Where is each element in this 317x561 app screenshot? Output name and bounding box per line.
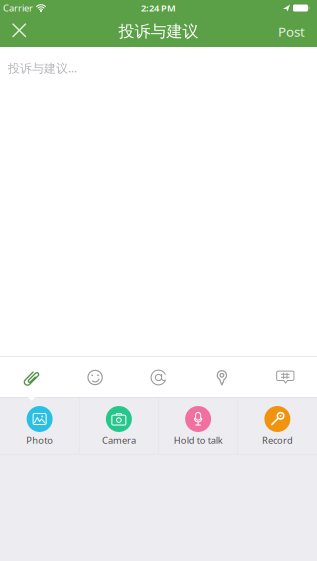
staticText: Photo — [26, 434, 53, 446]
button[interactable] — [73, 357, 117, 397]
staticText: 投诉与建议... — [8, 60, 77, 76]
staticText: 投诉与建议 — [118, 22, 198, 41]
button[interactable]: Post — [278, 15, 305, 48]
button[interactable]: Photo — [0, 397, 79, 455]
button[interactable] — [263, 357, 307, 397]
button[interactable] — [6, 18, 32, 45]
button[interactable]: Camera — [79, 397, 158, 455]
staticText: Carrier — [3, 2, 33, 14]
button[interactable] — [136, 357, 180, 397]
button[interactable]: Hold to talk — [158, 397, 238, 455]
staticText: Post — [278, 23, 305, 40]
staticText: Camera — [102, 434, 136, 446]
button[interactable]: Record — [238, 397, 317, 455]
staticText: Hold to talk — [174, 434, 223, 446]
button[interactable] — [200, 358, 244, 398]
button[interactable] — [10, 358, 54, 398]
staticText: 2:24 PM — [141, 2, 176, 14]
staticText: Record — [262, 434, 293, 446]
